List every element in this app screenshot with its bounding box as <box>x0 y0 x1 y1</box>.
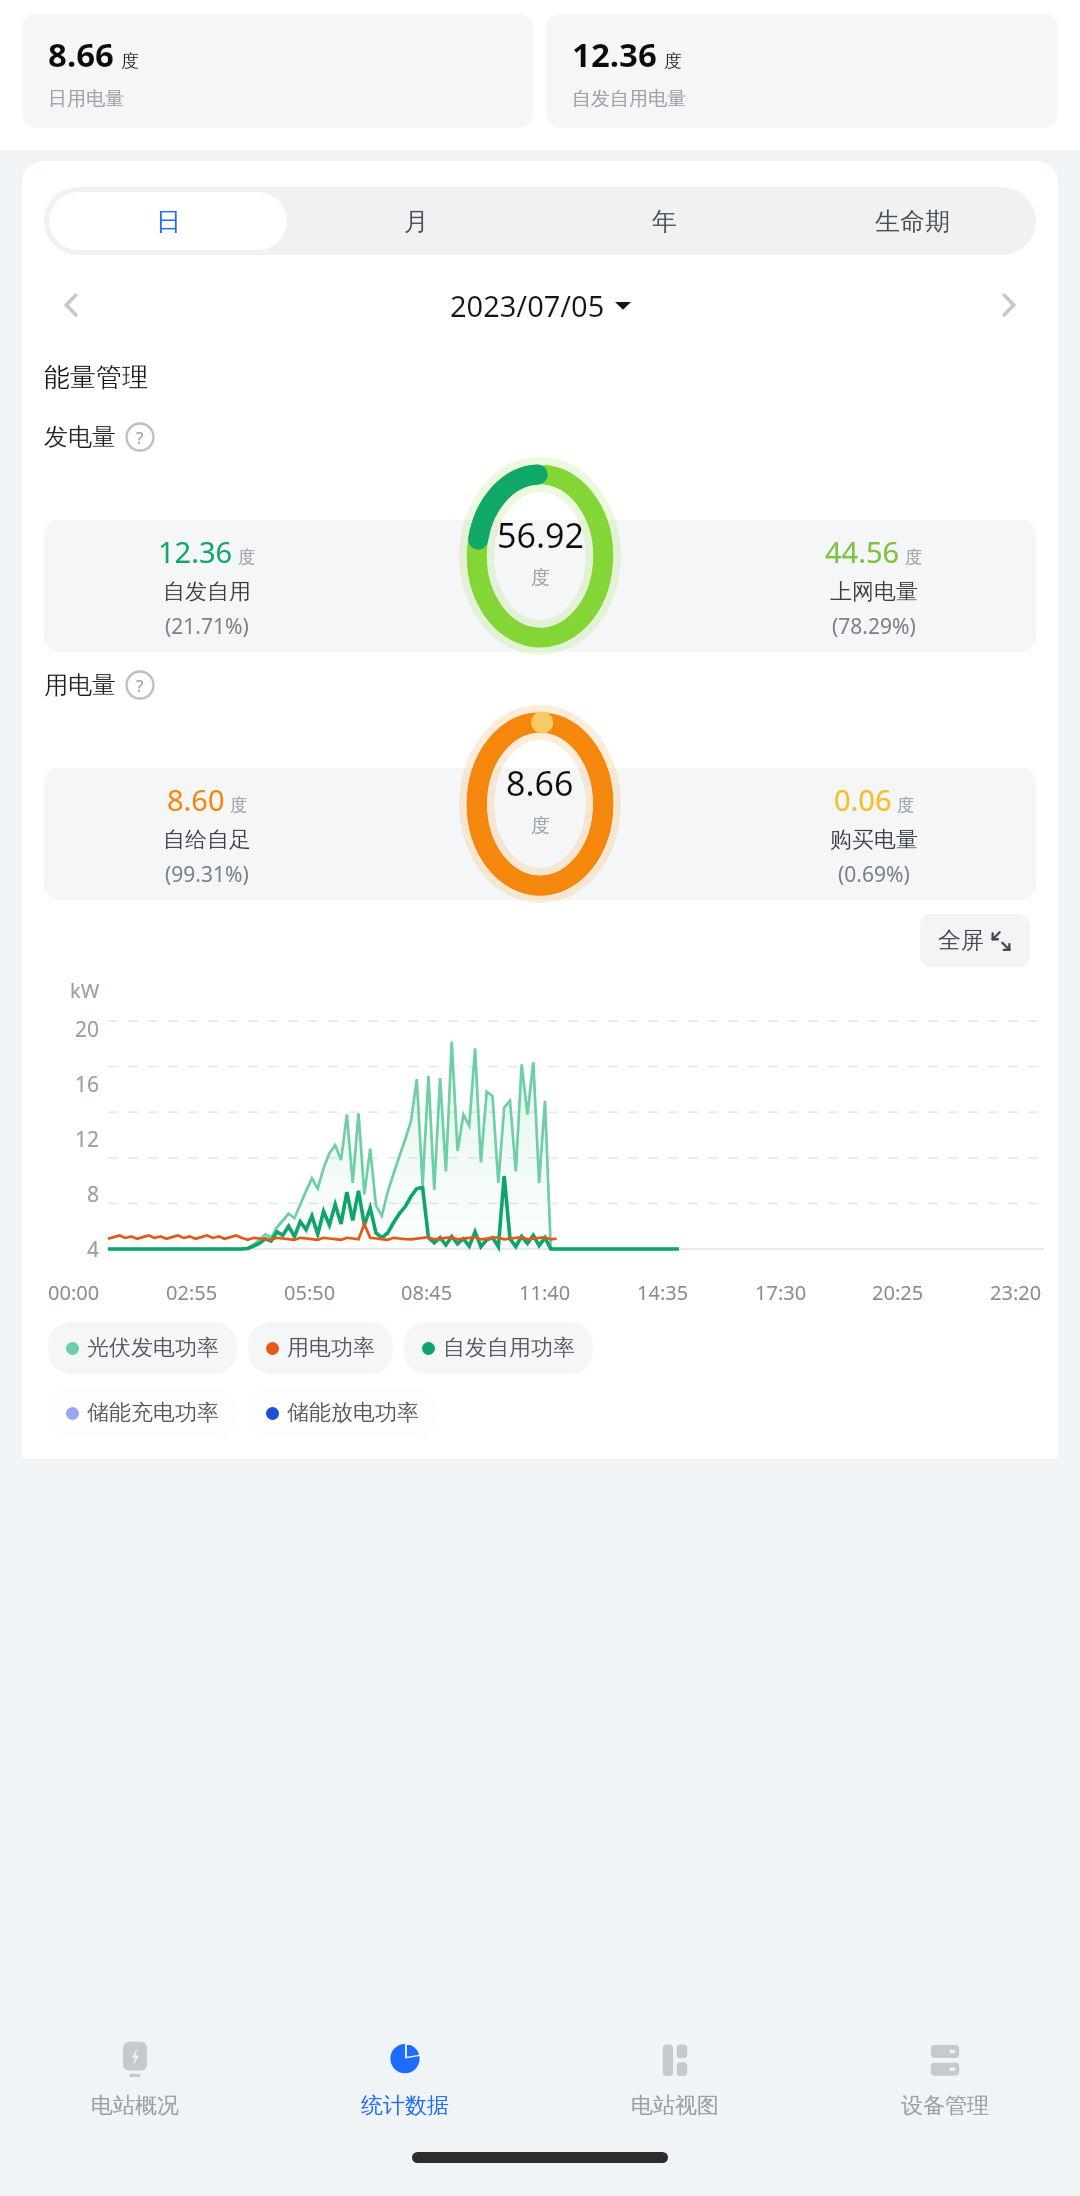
staticText: 8.66 <box>506 760 574 806</box>
staticText: 全屏 <box>938 926 984 955</box>
staticText: 自发自用电量 <box>572 87 686 111</box>
button[interactable]: 统计数据 <box>270 2020 540 2136</box>
staticText: 日用电量 <box>48 87 124 111</box>
staticText: 11:40 <box>519 1279 571 1306</box>
staticText: 自给自足 <box>163 826 251 854</box>
staticText: 生命期 <box>875 206 950 237</box>
button[interactable]: 储能放电功率 <box>248 1387 437 1439</box>
staticText: 电站视图 <box>631 2092 719 2120</box>
button[interactable]: 全屏 <box>920 914 1030 967</box>
button[interactable]: 日 <box>49 192 287 250</box>
staticText: 用电量 <box>44 670 116 700</box>
button[interactable]: 12.36 <box>546 14 1058 128</box>
staticText: kW <box>70 977 100 1004</box>
staticText: 17:30 <box>755 1279 807 1306</box>
staticText: 用电功率 <box>287 1334 375 1362</box>
staticText: 购买电量 <box>830 826 918 854</box>
staticText: 度 <box>531 566 550 590</box>
button[interactable]: 用电功率 <box>248 1322 393 1374</box>
staticText: 16 <box>75 1070 100 1099</box>
button[interactable]: 光伏发电功率 <box>48 1322 237 1374</box>
staticText: 56.92 <box>497 512 584 558</box>
staticText: 储能放电功率 <box>287 1399 419 1427</box>
staticText: 度 <box>664 50 682 73</box>
staticText: 电站概况 <box>91 2092 179 2120</box>
staticText: 8.66 <box>48 32 114 77</box>
staticText: 05:50 <box>284 1279 336 1306</box>
staticText: ? <box>136 426 144 449</box>
staticText: 月 <box>404 206 429 237</box>
staticText: 设备管理 <box>901 2092 989 2120</box>
staticText: (21.71%) <box>165 612 249 641</box>
staticText: 23:20 <box>990 1279 1042 1306</box>
staticText: 光伏发电功率 <box>87 1334 219 1362</box>
button[interactable]: 生命期 <box>793 192 1031 250</box>
button[interactable]: 自发自用功率 <box>404 1322 593 1374</box>
staticText: 4 <box>87 1235 100 1264</box>
staticText: 度 <box>897 795 914 816</box>
staticText: 度 <box>531 814 550 838</box>
button[interactable]: 电站概况 <box>0 2020 270 2136</box>
staticText: 日 <box>156 206 181 237</box>
staticText: 12 <box>75 1125 100 1154</box>
staticText: 08:45 <box>401 1279 453 1306</box>
staticText: 44.56 <box>825 532 900 571</box>
staticText: 20 <box>75 1015 100 1044</box>
staticText: (99.31%) <box>165 860 249 889</box>
staticText: (78.29%) <box>832 612 916 641</box>
staticText: 上网电量 <box>830 578 918 606</box>
button[interactable]: 8.66 <box>22 14 533 128</box>
button[interactable]: Help <box>125 670 155 700</box>
staticText: 度 <box>238 547 255 568</box>
staticText: 2023/07/05 <box>450 286 605 325</box>
button[interactable]: 设备管理 <box>810 2020 1080 2136</box>
button[interactable]: Previous day <box>44 277 100 333</box>
staticText: 12.36 <box>572 32 657 77</box>
staticText: 12.36 <box>158 532 233 571</box>
staticText: 02:55 <box>166 1279 218 1306</box>
staticText: 度 <box>121 50 139 73</box>
button[interactable]: 2023/07/05 <box>100 286 980 325</box>
staticText: 度 <box>230 795 247 816</box>
staticText: 发电量 <box>44 422 116 452</box>
staticText: 0.06 <box>834 780 892 819</box>
staticText: 20:25 <box>872 1279 924 1306</box>
staticText: 储能充电功率 <box>87 1399 219 1427</box>
staticText: ? <box>136 674 144 697</box>
staticText: 自发自用功率 <box>443 1334 575 1362</box>
staticText: 统计数据 <box>361 2092 449 2120</box>
staticText: 度 <box>905 547 922 568</box>
staticText: 自发自用 <box>163 578 251 606</box>
staticText: 能量管理 <box>44 361 148 394</box>
staticText: 14:35 <box>637 1279 689 1306</box>
staticText: 00:00 <box>48 1279 100 1306</box>
staticText: (0.69%) <box>838 860 910 889</box>
staticText: 8.60 <box>167 780 225 819</box>
button[interactable]: 电站视图 <box>540 2020 810 2136</box>
button[interactable]: 年 <box>545 192 783 250</box>
button[interactable]: 储能充电功率 <box>48 1387 237 1439</box>
button[interactable]: Help <box>125 422 155 452</box>
staticText: 8 <box>87 1180 100 1209</box>
staticText: 年 <box>652 206 677 237</box>
button[interactable]: Next day <box>980 277 1036 333</box>
button[interactable]: 月 <box>297 192 535 250</box>
